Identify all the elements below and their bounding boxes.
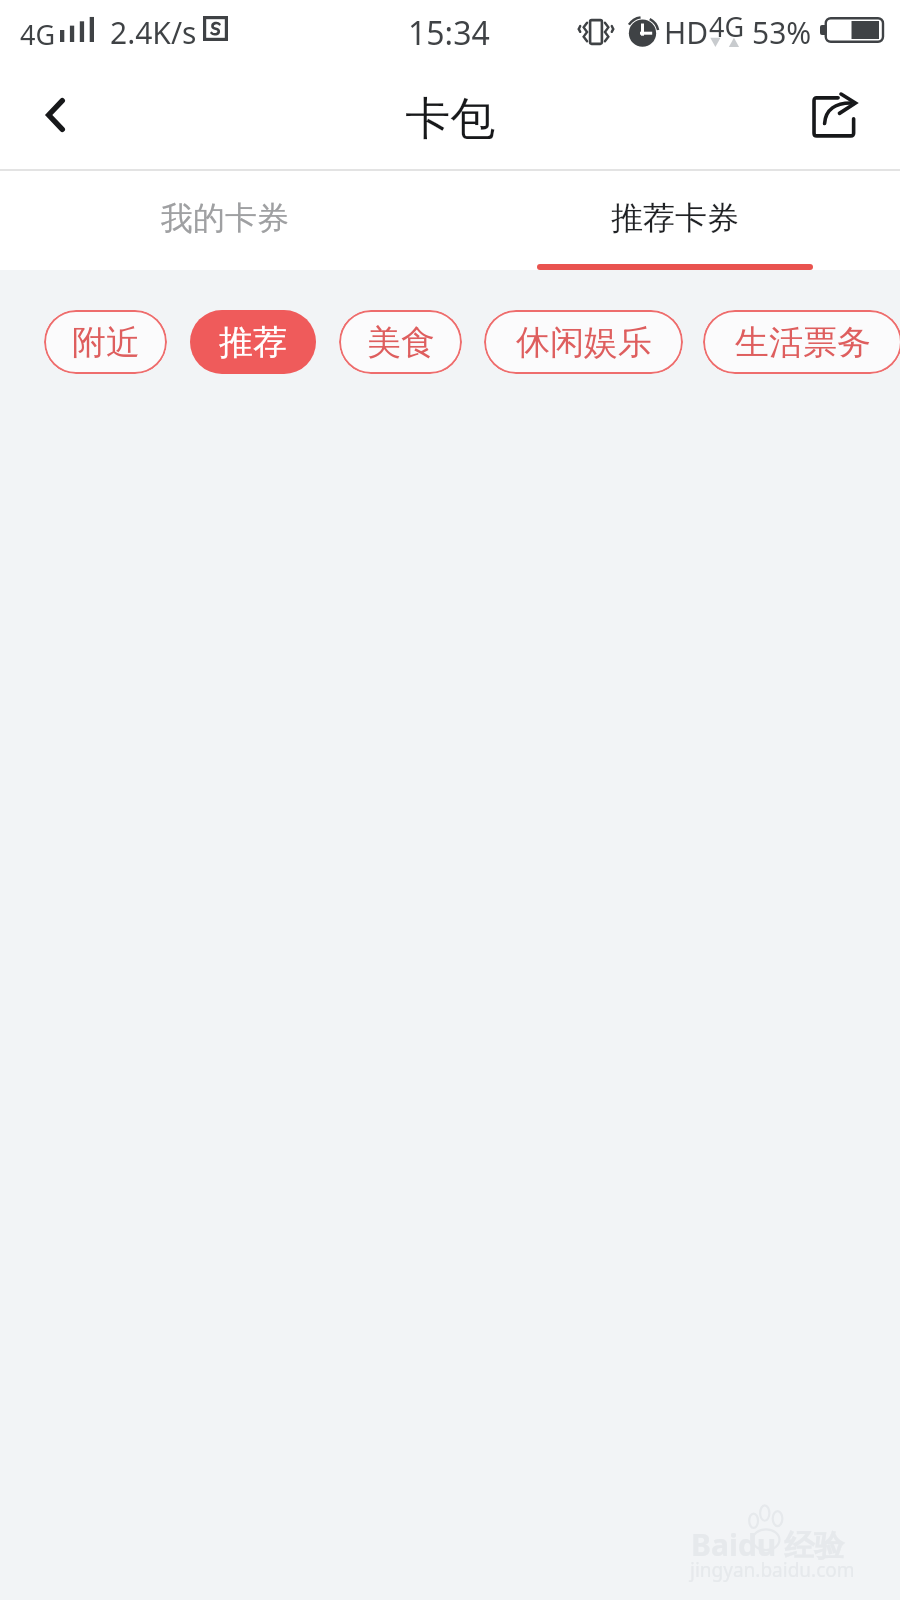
staticText: 2.4K/s bbox=[110, 12, 197, 53]
staticText: 我的卡券 bbox=[161, 198, 289, 238]
staticText: 美食 bbox=[367, 321, 435, 364]
staticText: 卡包 bbox=[405, 91, 495, 148]
button[interactable]: 生活票务 bbox=[703, 310, 900, 374]
staticText: 53% bbox=[752, 12, 812, 53]
staticText: 4G bbox=[709, 8, 745, 45]
button[interactable]: 美食 bbox=[339, 310, 462, 374]
staticText: 15:34 bbox=[408, 11, 490, 55]
staticText: 生活票务 bbox=[735, 321, 871, 364]
button[interactable]: Back bbox=[0, 70, 112, 171]
button[interactable]: 推荐 bbox=[190, 310, 316, 374]
button[interactable]: 推荐卡券 bbox=[450, 171, 900, 270]
button[interactable]: Share bbox=[788, 70, 900, 171]
staticText: 休闲娱乐 bbox=[516, 321, 652, 364]
staticText: 附近 bbox=[72, 321, 140, 364]
staticText: Baidu 经验 bbox=[691, 1524, 845, 1565]
staticText: jingyan.baidu.com bbox=[690, 1557, 855, 1583]
button[interactable]: 附近 bbox=[44, 310, 167, 374]
staticText: 推荐 bbox=[219, 321, 287, 364]
staticText: 4G bbox=[20, 16, 56, 53]
staticText: HD bbox=[664, 12, 709, 53]
button[interactable]: 休闲娱乐 bbox=[484, 310, 683, 374]
staticText: 推荐卡券 bbox=[611, 198, 739, 238]
button[interactable]: 我的卡券 bbox=[0, 171, 450, 270]
